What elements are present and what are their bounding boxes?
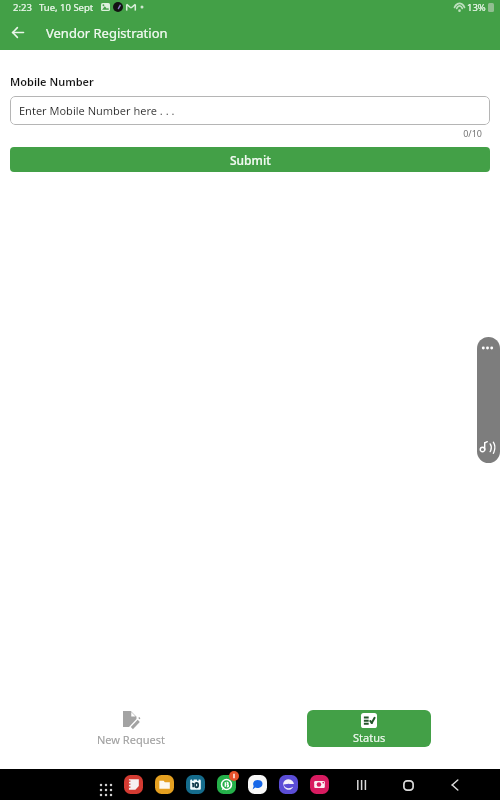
staticText: Vendor Registration <box>46 24 168 42</box>
button[interactable]: New Request <box>86 711 175 747</box>
staticText: 0/10 <box>0 127 482 139</box>
button[interactable]: App 2 <box>155 775 174 794</box>
staticText: Submit <box>230 152 271 168</box>
button[interactable]: Apps <box>96 780 116 800</box>
button[interactable]: Back <box>442 772 468 798</box>
staticText: Tue, 10 Sept <box>39 1 94 14</box>
button[interactable]: App 5 <box>248 775 267 794</box>
button[interactable]: Home <box>395 772 421 798</box>
button[interactable]: Recent apps <box>348 772 374 798</box>
button[interactable]: App 1 <box>124 775 143 794</box>
staticText: New Request <box>97 732 165 747</box>
button[interactable]: Enter Mobile Number here . . . <box>10 96 490 125</box>
staticText: Mobile Number <box>10 74 94 89</box>
staticText: 2:23 <box>13 1 32 14</box>
button[interactable]: Status <box>307 710 431 747</box>
button[interactable]: Edge panel <box>477 337 500 463</box>
button[interactable]: App 7 <box>310 775 329 794</box>
staticText: Enter Mobile Number here . . . <box>19 103 175 118</box>
staticText: Status <box>353 730 386 745</box>
button[interactable]: App 4 <box>217 775 236 794</box>
button[interactable]: Submit <box>10 147 490 172</box>
staticText: 13% <box>467 1 486 14</box>
button[interactable]: App 6 <box>279 775 298 794</box>
button[interactable]: Back <box>6 21 29 44</box>
button[interactable]: App 3 <box>186 775 205 794</box>
